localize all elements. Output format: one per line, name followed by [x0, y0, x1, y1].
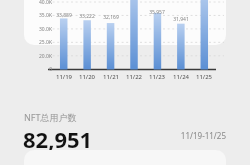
staticText: 11/21	[100, 73, 122, 82]
staticText: 32,169	[99, 14, 123, 22]
staticText: 30.0K	[30, 26, 52, 33]
staticText: 35.0K	[30, 12, 52, 19]
staticText: NFT总用户数	[24, 111, 77, 123]
staticText: 40.0K	[30, 0, 52, 6]
staticText: 33,889	[52, 12, 76, 20]
staticText: 31,941	[169, 16, 193, 24]
staticText: 11/24	[170, 73, 192, 82]
button[interactable]	[24, 0, 226, 45]
staticText: 11/23	[146, 73, 168, 82]
staticText: 11/25	[193, 73, 215, 82]
button[interactable]: 11/19-11/25	[146, 130, 226, 144]
other: NFT user bar chart	[0, 0, 250, 165]
staticText: 11/22	[123, 73, 145, 82]
staticText: 11/19	[53, 73, 75, 82]
staticText: 25.0K	[30, 39, 52, 46]
staticText: 82,951	[23, 124, 93, 154]
staticText: 0	[43, 66, 52, 73]
staticText: 11/19-11/25	[146, 130, 226, 144]
staticText: 20.0K	[30, 53, 52, 60]
staticText: 33,222	[75, 13, 99, 21]
staticText: 11/20	[76, 73, 98, 82]
staticText: 35,957	[145, 9, 169, 17]
